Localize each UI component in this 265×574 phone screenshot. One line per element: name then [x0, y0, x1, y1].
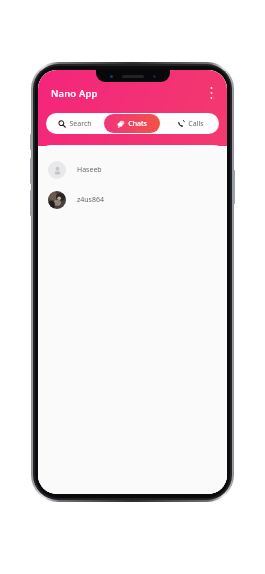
button[interactable]: Haseeb [38, 155, 227, 185]
staticText: Chats [128, 119, 147, 129]
staticText: Nano App [51, 87, 98, 100]
button[interactable]: z4us864 [38, 185, 227, 215]
staticText: Calls [188, 119, 204, 129]
button[interactable]: Chats [104, 114, 160, 133]
staticText: Haseeb [77, 165, 102, 175]
button[interactable]: Search [47, 114, 102, 133]
button[interactable]: Calls [162, 114, 218, 133]
button[interactable]: More options [203, 84, 219, 102]
staticText: z4us864 [77, 195, 104, 205]
staticText: Search [69, 119, 92, 129]
